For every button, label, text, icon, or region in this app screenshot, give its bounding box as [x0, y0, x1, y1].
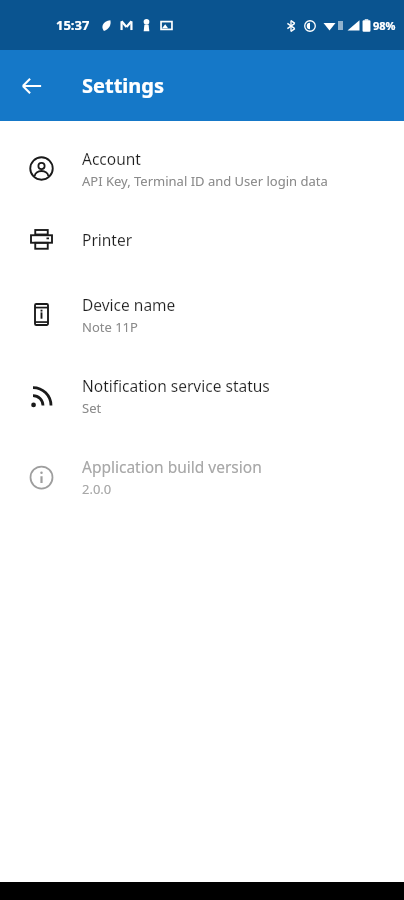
button[interactable]: Printer: [0, 204, 404, 274]
staticText: 2.0.0: [82, 480, 112, 498]
staticText: Application build version: [82, 456, 262, 477]
staticText: Notification service status: [82, 375, 270, 396]
staticText: Set: [82, 399, 102, 417]
button[interactable]: Back: [8, 62, 56, 110]
staticText: Settings: [82, 72, 164, 99]
staticText: API Key, Terminal ID and User login data: [82, 172, 328, 190]
button[interactable]: Application build version: [0, 437, 404, 517]
button[interactable]: Device name: [0, 274, 404, 355]
button[interactable]: Notification service status: [0, 355, 404, 437]
staticText: Account: [82, 148, 141, 169]
staticText: Note 11P: [82, 318, 138, 336]
button[interactable]: Account: [0, 133, 404, 204]
staticText: 98%: [373, 18, 396, 33]
staticText: Printer: [82, 229, 133, 250]
staticText: 15:37: [56, 16, 90, 34]
staticText: Device name: [82, 294, 176, 315]
